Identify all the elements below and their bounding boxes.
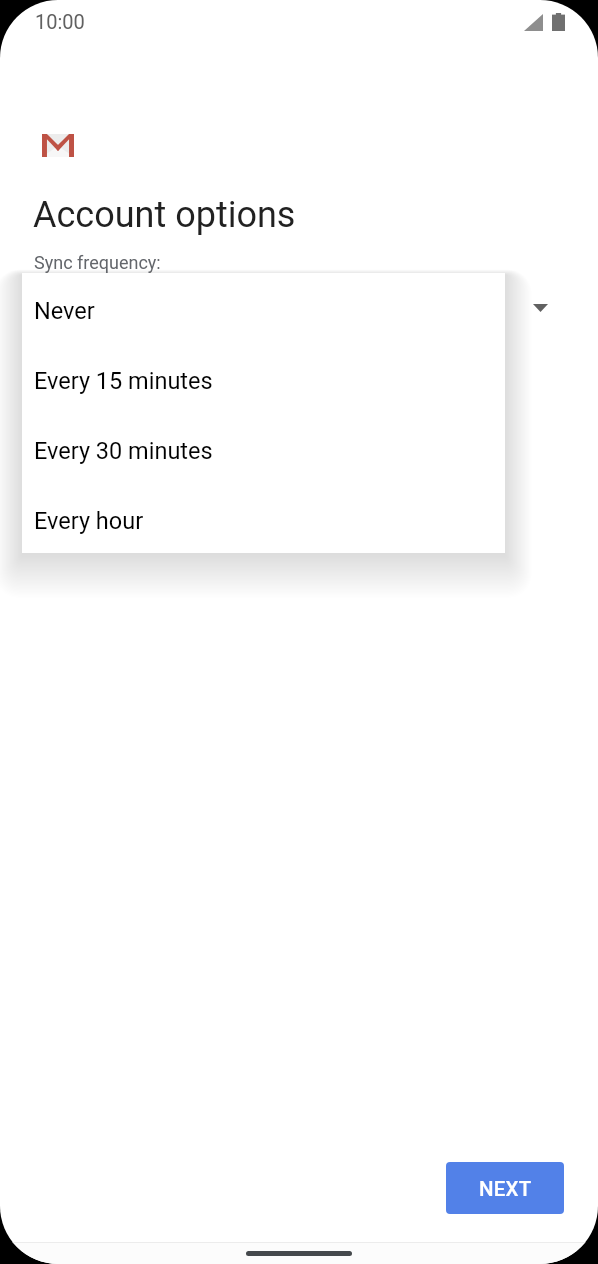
staticText: Never — [34, 297, 95, 325]
button[interactable]: Open sync frequency dropdown — [518, 286, 562, 330]
button[interactable]: Every 15 minutes — [22, 343, 505, 413]
staticText: Every hour — [34, 507, 144, 535]
button[interactable]: NEXT — [446, 1162, 564, 1214]
staticText: Sync frequency: — [34, 252, 161, 273]
button[interactable]: Never — [22, 273, 505, 343]
staticText: Every 15 minutes — [34, 367, 213, 395]
button[interactable]: Every hour — [22, 483, 505, 553]
staticText: Every 30 minutes — [34, 437, 213, 465]
staticText: 10:00 — [35, 10, 85, 33]
staticText: Account options — [33, 194, 296, 236]
staticText: NEXT — [479, 1177, 532, 1201]
button[interactable]: Every 30 minutes — [22, 413, 505, 483]
